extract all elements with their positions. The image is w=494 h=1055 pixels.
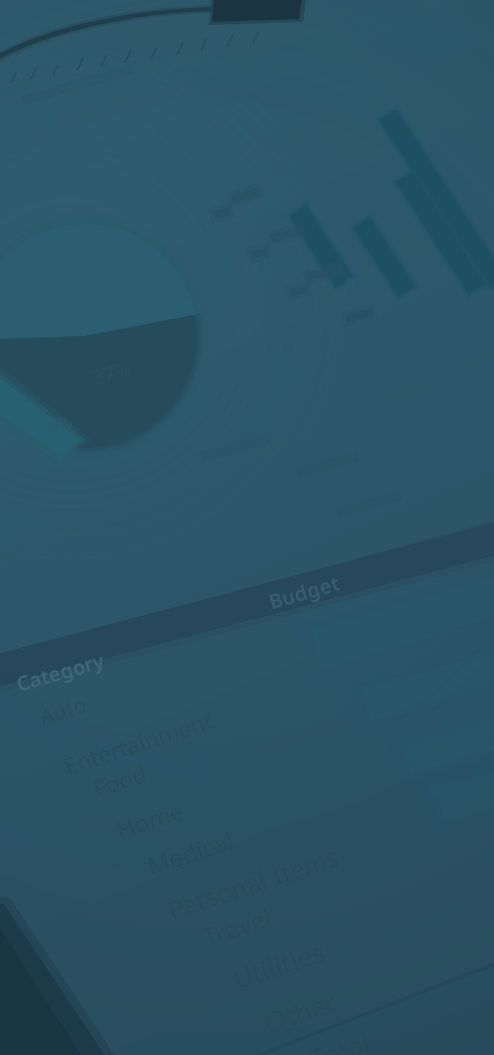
staticText: Budget (268, 579, 340, 605)
staticText: Category (15, 659, 105, 685)
staticText: 9% (48, 413, 71, 435)
staticText: Food (93, 766, 147, 796)
staticText: Auto (39, 696, 87, 724)
